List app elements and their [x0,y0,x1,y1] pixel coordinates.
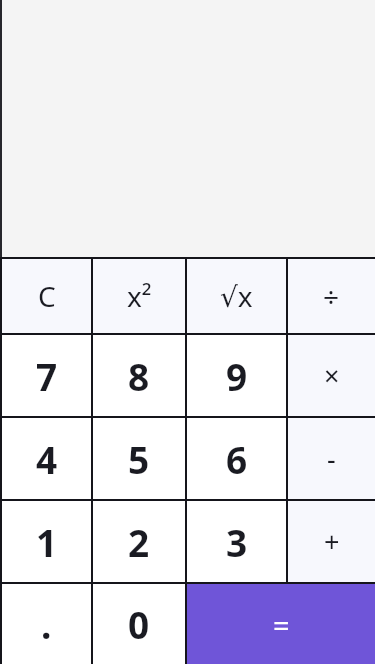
button[interactable]: 9 [187,335,286,416]
button[interactable]: 0 [93,584,185,664]
button[interactable]: ÷ [288,259,375,333]
button[interactable]: 5 [93,418,185,499]
button[interactable]: √x [187,259,286,333]
button[interactable]: 1 [2,501,91,582]
staticText: 6 [226,434,248,484]
staticText: ÷ [323,277,340,315]
button[interactable]: 6 [187,418,286,499]
button[interactable]: C [2,259,91,333]
button[interactable]: 7 [2,335,91,416]
staticText: x² [127,277,152,315]
staticText: 1 [36,517,58,567]
staticText: 7 [36,351,58,401]
staticText: 2 [128,517,150,567]
staticText: 4 [36,434,58,484]
staticText: = [273,605,290,644]
button[interactable]: . [2,584,91,664]
button[interactable]: 4 [2,418,91,499]
button[interactable]: × [288,335,375,416]
button[interactable]: + [288,501,375,582]
staticText: 0 [128,599,150,649]
button[interactable]: 2 [93,501,185,582]
button[interactable]: x² [93,259,185,333]
staticText: 3 [226,517,248,567]
button[interactable]: = [187,584,375,664]
staticText: + [324,523,340,560]
staticText: 9 [226,351,248,401]
staticText: C [38,277,56,315]
staticText: . [41,599,52,649]
button[interactable]: 3 [187,501,286,582]
staticText: 5 [128,434,150,484]
button[interactable]: 8 [93,335,185,416]
staticText: × [324,357,340,394]
staticText: 8 [128,351,150,401]
staticText: √x [220,277,253,315]
staticText: - [327,440,336,477]
button[interactable]: - [288,418,375,499]
